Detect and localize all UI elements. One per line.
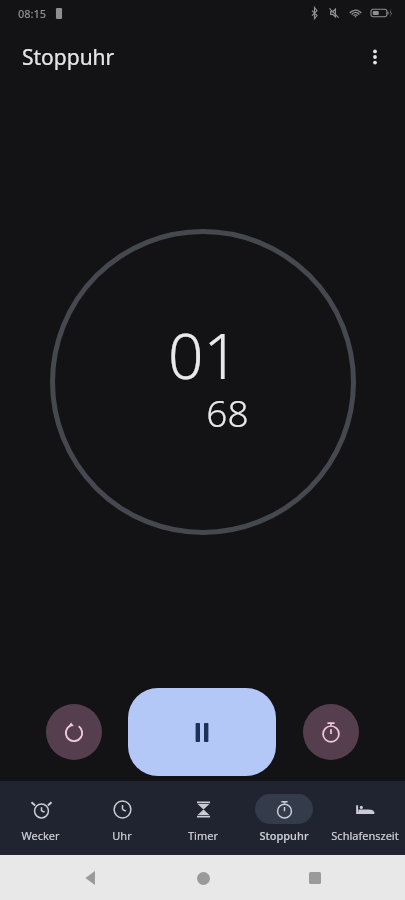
button[interactable]: Mehr Optionen	[353, 35, 397, 79]
button[interactable]: Wecker	[0, 781, 81, 855]
button[interactable]: Uhr	[81, 781, 162, 855]
staticText: 01	[168, 313, 239, 397]
staticText: Wecker	[21, 828, 60, 843]
button[interactable]: Timer	[162, 781, 243, 855]
button[interactable]: Startbildschirm	[181, 856, 225, 900]
staticText: Uhr	[112, 828, 132, 843]
button[interactable]: Pause	[128, 688, 276, 776]
staticText: Schlafenszeit	[331, 828, 399, 843]
button[interactable]: Zurück	[69, 856, 113, 900]
staticText: 68	[206, 387, 249, 437]
staticText: Stoppuhr	[22, 43, 115, 72]
staticText: Timer	[188, 828, 218, 843]
button[interactable]: Übersicht	[293, 856, 337, 900]
button[interactable]: Runde	[303, 704, 359, 760]
staticText: Stoppuhr	[259, 828, 309, 843]
staticText: 08:15	[18, 6, 47, 21]
button[interactable]: Stoppuhr	[243, 781, 324, 855]
button[interactable]: Zurücksetzen	[46, 704, 102, 760]
button[interactable]: Schlafenszeit	[324, 781, 405, 855]
